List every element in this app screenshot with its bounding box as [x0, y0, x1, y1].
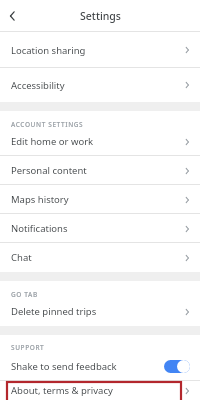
- staticText: Chat: [11, 251, 32, 264]
- staticText: Delete pinned trips: [11, 305, 97, 318]
- staticText: Settings: [80, 9, 121, 23]
- staticText: SUPPORT: [11, 343, 45, 352]
- button[interactable]: Shake to send feedback: [0, 355, 200, 377]
- staticText: Maps history: [11, 193, 69, 206]
- button[interactable]: About, terms & privacy: [0, 381, 200, 400]
- staticText: ACCOUNT SETTINGS: [11, 120, 84, 129]
- button[interactable]: Personal content: [0, 162, 200, 179]
- button[interactable]: Notifications: [0, 220, 200, 237]
- staticText: GO TAB: [11, 290, 38, 299]
- staticText: Personal content: [11, 164, 87, 177]
- staticText: Location sharing: [11, 44, 86, 57]
- button[interactable]: Shake to send feedback toggle: [164, 359, 192, 373]
- staticText: About, terms & privacy: [11, 384, 113, 397]
- button[interactable]: Delete pinned trips: [0, 303, 200, 320]
- staticText: Accessibility: [11, 79, 65, 92]
- staticText: Notifications: [11, 222, 68, 235]
- button[interactable]: Back: [0, 3, 26, 29]
- button[interactable]: Chat: [0, 249, 200, 266]
- button[interactable]: Location sharing: [0, 40, 200, 60]
- button[interactable]: Edit home or work: [0, 133, 200, 150]
- button[interactable]: Accessibility: [0, 75, 200, 95]
- staticText: Shake to send feedback: [11, 360, 117, 373]
- staticText: Edit home or work: [11, 135, 94, 148]
- button[interactable]: Maps history: [0, 191, 200, 208]
